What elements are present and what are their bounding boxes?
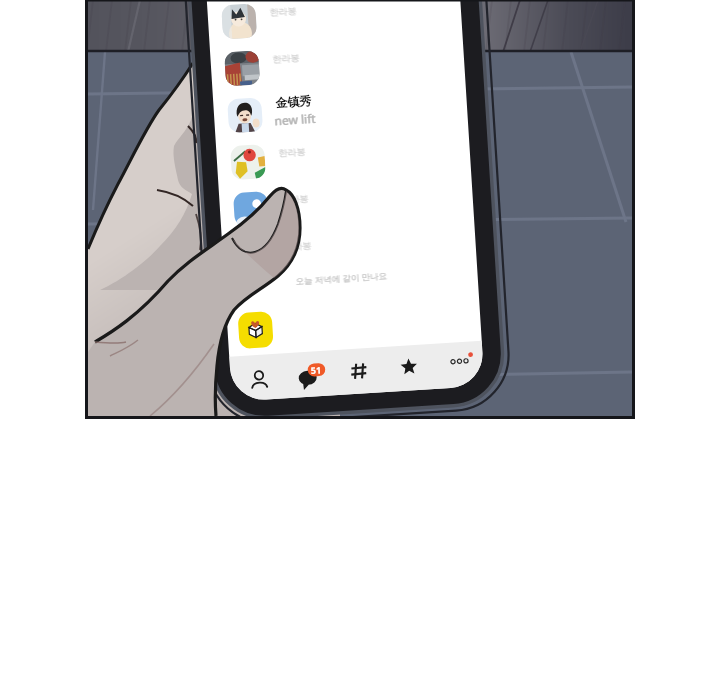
button[interactable]: Comic panel: a hand holding a phone: [0, 0, 720, 700]
